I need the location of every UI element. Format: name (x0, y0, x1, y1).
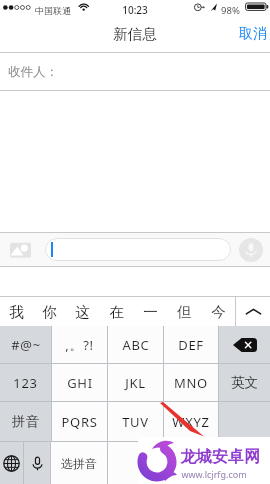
button[interactable] (219, 402, 270, 441)
staticText: 中国联通 (35, 5, 71, 16)
staticText: www.lcjrfg.com (181, 468, 247, 480)
button[interactable]: 英文 (219, 364, 270, 401)
staticText: 我 (9, 303, 24, 321)
button[interactable]: 拼音 (0, 402, 51, 441)
staticText: WXYZ (172, 413, 210, 431)
button[interactable]: 取消 (229, 20, 270, 48)
staticText: 英文 (231, 374, 258, 391)
button[interactable]: TUV (108, 402, 163, 441)
staticText: DEF (178, 336, 204, 354)
staticText: ,。?! (65, 336, 94, 354)
button[interactable]: JKL (108, 364, 163, 401)
button[interactable]: 但 (167, 297, 201, 326)
button[interactable]: Delete (219, 326, 270, 363)
button[interactable]: Camera (10, 241, 31, 258)
button[interactable] (45, 238, 231, 261)
button[interactable]: ABC (108, 326, 163, 363)
staticText: 取消 (239, 25, 267, 43)
button[interactable]: Dictation (24, 442, 50, 484)
staticText: 10:23 (122, 3, 148, 17)
button[interactable]: 选拼音 (51, 442, 107, 484)
button[interactable]: 你 (33, 297, 66, 326)
staticText: 新信息 (113, 25, 157, 43)
staticText: 但 (177, 303, 192, 321)
staticText: 你 (42, 303, 57, 321)
staticText: 拼音 (12, 413, 39, 430)
staticText: 今 (211, 303, 226, 321)
button[interactable]: DEF (164, 326, 218, 363)
button[interactable]: #@~ (0, 326, 51, 363)
button[interactable]: GHI (52, 364, 107, 401)
staticText: GHI (67, 374, 93, 392)
staticText: 一 (143, 303, 158, 321)
button[interactable]: 123 (0, 364, 51, 401)
other: Delete (219, 326, 270, 363)
button[interactable]: PQRS (52, 402, 107, 441)
staticText: #@~ (11, 336, 41, 354)
button[interactable]: Voice input (239, 238, 263, 262)
staticText: 收件人： (8, 64, 58, 80)
staticText: 在 (109, 303, 124, 321)
staticText: ABC (122, 336, 150, 354)
button[interactable] (108, 442, 270, 484)
staticText: 123 (13, 374, 38, 392)
button[interactable]: 我 (0, 297, 33, 326)
staticText: 98% (221, 4, 240, 17)
button[interactable]: WXYZ (164, 402, 218, 441)
staticText: 龙城安卓网 (180, 447, 260, 467)
button[interactable]: 收件人： (0, 53, 270, 90)
staticText: MNO (174, 374, 208, 392)
button[interactable]: ,。?! (52, 326, 107, 363)
staticText: TUV (122, 413, 149, 431)
staticText: PQRS (61, 413, 98, 431)
button[interactable]: 在 (99, 297, 133, 326)
button[interactable]: Switch keyboard (0, 442, 23, 484)
staticText: JKL (125, 374, 146, 392)
button[interactable]: More candidates (236, 297, 270, 326)
button[interactable]: 一 (133, 297, 167, 326)
button[interactable]: MNO (164, 364, 218, 401)
staticText: 这 (75, 303, 90, 321)
button[interactable]: 今 (201, 297, 235, 326)
staticText: 选拼音 (61, 456, 97, 471)
button[interactable]: 这 (66, 297, 99, 326)
